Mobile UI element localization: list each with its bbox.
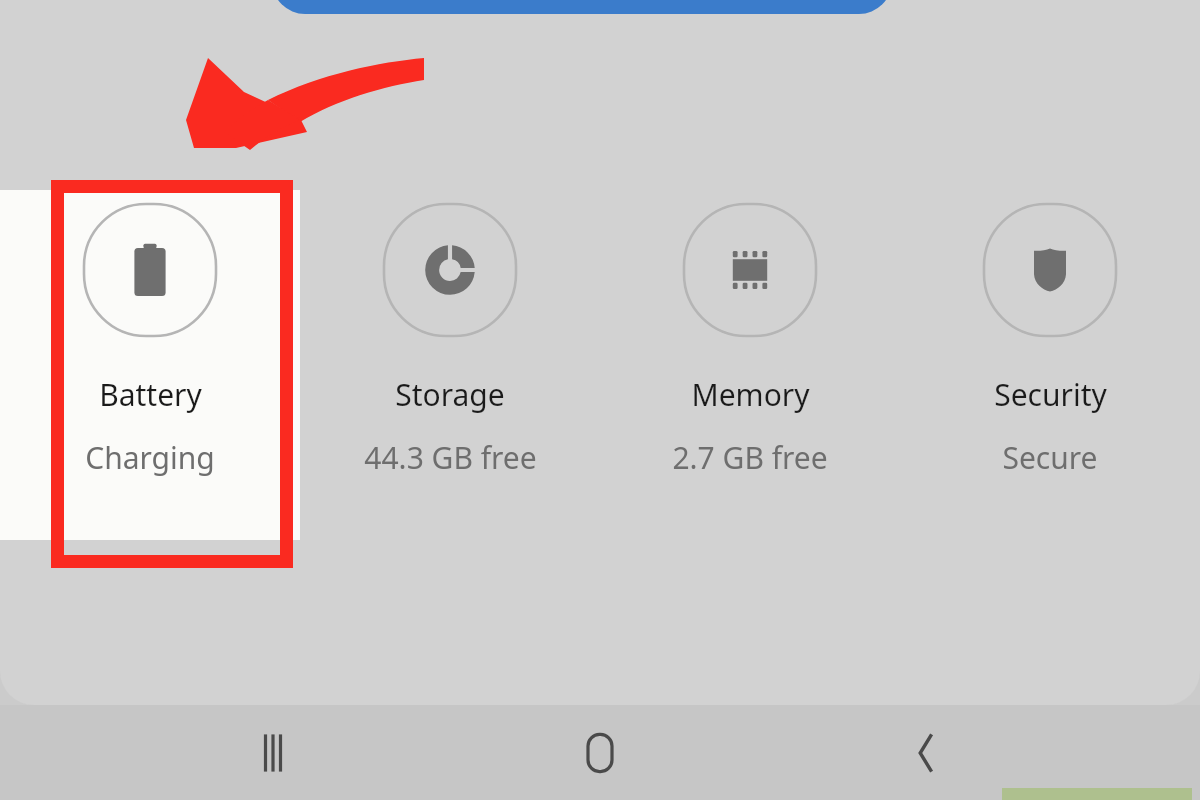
staticText: Memory — [691, 374, 810, 415]
staticText: Security — [994, 374, 1107, 415]
button[interactable]: Recents — [218, 705, 328, 800]
button[interactable]: Memory — [600, 190, 900, 540]
button[interactable]: Storage — [300, 190, 600, 540]
staticText: Secure — [1002, 437, 1098, 478]
button[interactable]: Security — [900, 190, 1200, 540]
button[interactable]: Home — [545, 705, 655, 800]
staticText: 2.7 GB free — [672, 437, 828, 478]
button[interactable]: Battery — [0, 190, 300, 540]
staticText: 44.3 GB free — [364, 437, 537, 478]
staticText: Battery — [99, 374, 202, 415]
staticText: Charging — [85, 437, 215, 478]
staticText: Storage — [395, 374, 505, 415]
button[interactable]: Back — [873, 705, 983, 800]
button[interactable] — [272, 0, 892, 14]
